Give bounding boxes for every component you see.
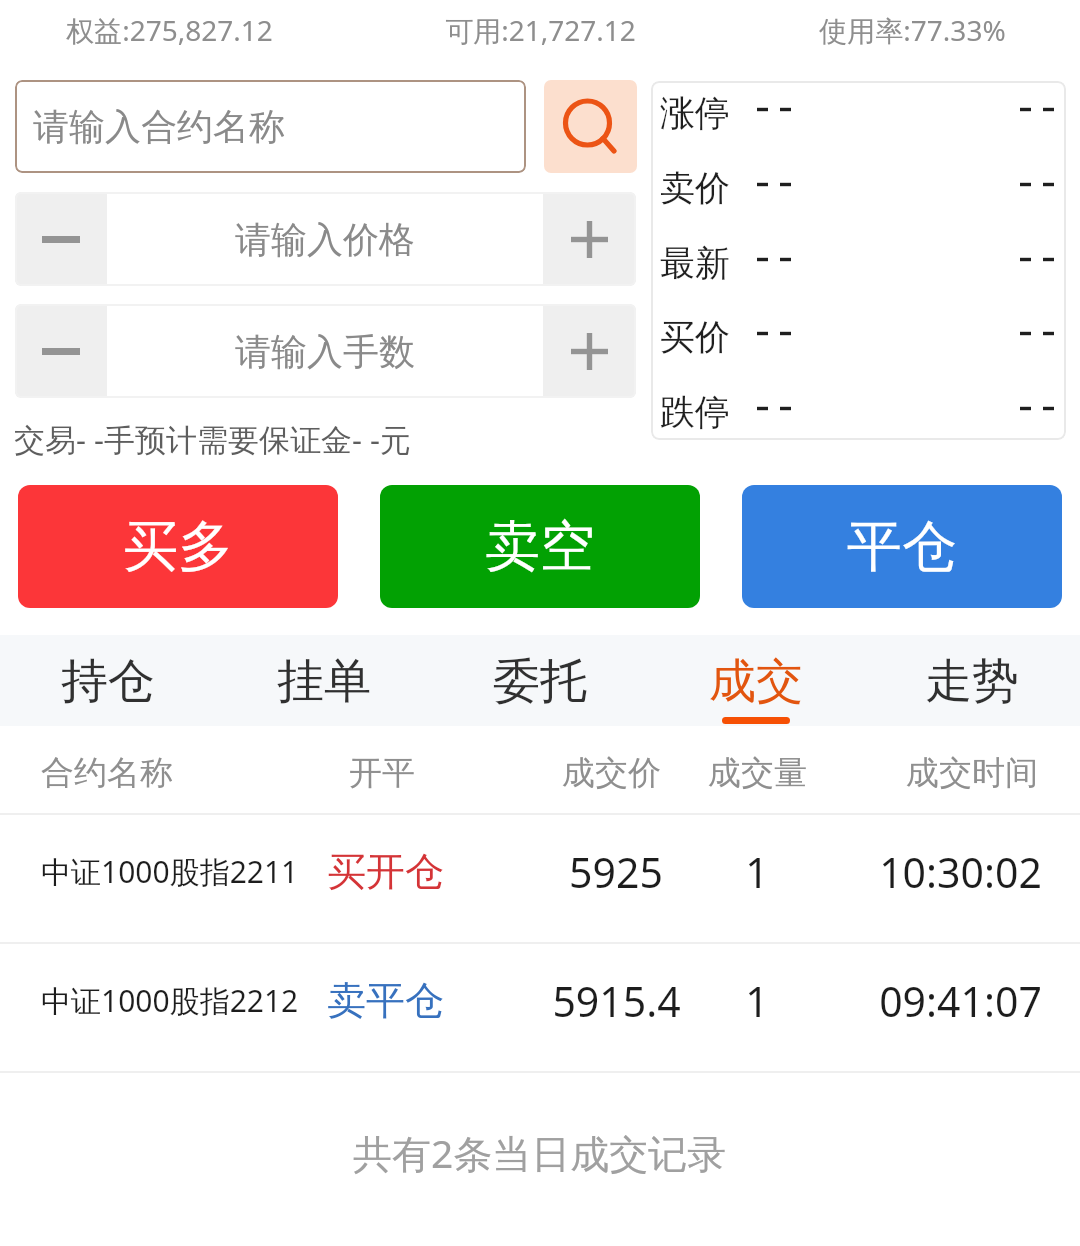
staticText: 买开仓 [327,847,444,896]
staticText: 5925 [569,844,663,900]
staticText: 开平 [349,752,415,794]
button[interactable]: 加 [543,192,636,286]
button[interactable]: 买多 [18,485,338,608]
staticText: 成交价 [562,752,661,794]
button[interactable]: 中证1000股指2212 [0,944,1080,1071]
staticText: 合约名称 [41,752,173,794]
button[interactable]: 中证1000股指2211 [0,815,1080,942]
button[interactable]: 成交 [648,635,864,726]
button[interactable]: 搜索 [544,80,637,173]
button[interactable]: 请输入合约名称 [15,80,526,173]
staticText: 平仓 [847,512,957,581]
staticText: 涨停 [660,91,730,135]
staticText: 卖价 [660,166,730,210]
staticText: 1 [745,973,769,1029]
staticText: 权益:275,827.12 [66,11,273,49]
button[interactable]: 平仓 [742,485,1062,608]
staticText: 成交量 [708,752,807,794]
staticText: 挂单 [277,652,371,711]
staticText: 持仓 [61,652,155,711]
staticText: 请输入价格 [235,217,415,262]
button[interactable]: 加 [543,304,636,398]
button[interactable]: 持仓 [0,635,216,726]
staticText: 最新 [660,241,730,285]
button[interactable]: 挂单 [216,635,432,726]
staticText: 中证1000股指2211 [41,851,299,892]
staticText: 10:30:02 [879,844,1042,900]
staticText: 成交 [709,652,803,711]
button[interactable]: 卖空 [380,485,700,608]
staticText: 1 [745,844,769,900]
staticText: 跌停 [660,390,730,434]
staticText: 中证1000股指2212 [41,980,299,1021]
staticText: 成交时间 [906,752,1038,794]
staticText: 5915.4 [552,973,681,1029]
button[interactable]: 减 [15,192,107,286]
staticText: 买多 [123,512,233,581]
staticText: 使用率:77.33% [819,11,1006,49]
button[interactable]: 请输入价格 [107,192,543,286]
staticText: 委托 [493,652,587,711]
button[interactable]: 减 [15,304,107,398]
button[interactable]: 委托 [432,635,648,726]
staticText: 走势 [925,652,1019,711]
button[interactable]: 走势 [864,635,1080,726]
staticText: 卖空 [485,512,595,581]
staticText: 请输入合约名称 [33,104,285,149]
staticText: 09:41:07 [879,973,1042,1029]
staticText: 交易- -手预计需要保证金- -元 [14,418,412,460]
staticText: 可用:21,727.12 [445,11,636,49]
staticText: 请输入手数 [235,329,415,374]
staticText: 共有2条当日成交记录 [353,1126,727,1179]
staticText: 卖平仓 [327,976,444,1025]
button[interactable]: 请输入手数 [107,304,543,398]
staticText: 买价 [660,315,730,359]
